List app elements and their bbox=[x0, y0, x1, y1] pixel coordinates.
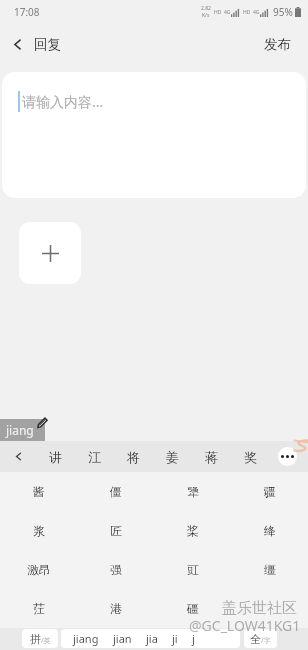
staticText: 疆 bbox=[264, 484, 276, 499]
staticText: 僵 bbox=[110, 484, 122, 499]
staticText: 酱 bbox=[33, 484, 45, 499]
button[interactable]: 请输入内容... bbox=[2, 72, 306, 198]
staticText: 茳 bbox=[33, 601, 45, 616]
staticText: ji bbox=[172, 631, 178, 646]
button[interactable]: 发布 bbox=[248, 26, 308, 62]
staticText: 95% bbox=[273, 5, 293, 19]
staticText: 匠 bbox=[110, 523, 122, 538]
button[interactable]: 江 bbox=[75, 441, 114, 472]
button[interactable]: 强 bbox=[77, 550, 154, 589]
staticText: 蒋 bbox=[205, 449, 218, 465]
staticText: 讲 bbox=[49, 449, 62, 465]
button[interactable]: jia bbox=[139, 629, 165, 648]
staticText: 江 bbox=[88, 449, 101, 465]
staticText: 浆 bbox=[33, 523, 45, 538]
staticText: @GC_LOW41KG1 bbox=[189, 616, 301, 635]
button[interactable]: 姜 bbox=[153, 441, 192, 472]
button[interactable]: More options bbox=[278, 447, 297, 466]
staticText: jia bbox=[146, 631, 158, 646]
staticText: 奖 bbox=[244, 449, 257, 465]
button[interactable]: 桨 bbox=[154, 511, 231, 550]
button[interactable]: 港 bbox=[77, 589, 154, 628]
staticText: /字 bbox=[261, 636, 271, 646]
button[interactable]: 茳 bbox=[0, 589, 77, 628]
staticText: 发布 bbox=[264, 36, 291, 53]
button[interactable]: 酱 bbox=[0, 472, 77, 511]
button[interactable]: Add photo bbox=[19, 222, 81, 284]
staticText: 礓 bbox=[187, 601, 199, 616]
other: Back bbox=[11, 38, 24, 51]
staticText: 盖乐世社区 bbox=[222, 599, 297, 618]
button[interactable]: 缰 bbox=[231, 550, 308, 589]
staticText: 回复 bbox=[34, 36, 61, 53]
staticText: 姜 bbox=[166, 449, 179, 465]
staticText: 2.82 bbox=[201, 5, 211, 12]
button[interactable]: 僵 bbox=[77, 472, 154, 511]
staticText: 激昂 bbox=[27, 562, 51, 577]
button[interactable] bbox=[231, 589, 308, 628]
button[interactable]: 疆 bbox=[231, 472, 308, 511]
staticText: 缰 bbox=[264, 562, 276, 577]
staticText: HD bbox=[243, 9, 251, 16]
button[interactable]: 绛 bbox=[231, 511, 308, 550]
button[interactable]: jiang bbox=[66, 629, 106, 648]
staticText: 桨 bbox=[187, 523, 199, 538]
staticText: 请输入内容... bbox=[22, 92, 104, 111]
staticText: 犟 bbox=[187, 484, 199, 499]
staticText: 港 bbox=[110, 601, 122, 616]
button[interactable]: 豇 bbox=[154, 550, 231, 589]
staticText: HD bbox=[214, 9, 222, 16]
staticText: 拼 bbox=[30, 632, 41, 646]
staticText: jiang bbox=[73, 631, 99, 646]
staticText: 17:08 bbox=[14, 5, 40, 19]
button[interactable]: 蒋 bbox=[192, 441, 231, 472]
staticText: 全 bbox=[250, 632, 261, 646]
staticText: j bbox=[192, 631, 195, 646]
button[interactable]: 激昂 bbox=[0, 550, 77, 589]
button[interactable]: ji bbox=[165, 629, 185, 648]
staticText: 4G bbox=[253, 9, 260, 16]
other: Edit input bbox=[37, 417, 48, 428]
staticText: jian bbox=[113, 631, 132, 646]
staticText: K/s bbox=[202, 12, 210, 19]
button[interactable]: Back bbox=[0, 26, 71, 62]
button[interactable]: 浆 bbox=[0, 511, 77, 550]
button[interactable]: Previous page bbox=[0, 441, 36, 472]
button[interactable]: 将 bbox=[114, 441, 153, 472]
button[interactable]: jiang bbox=[0, 419, 45, 441]
staticText: 绛 bbox=[264, 523, 276, 538]
button[interactable]: 匠 bbox=[77, 511, 154, 550]
button[interactable]: j bbox=[185, 629, 202, 648]
staticText: jiang bbox=[6, 422, 34, 438]
button[interactable]: 拼 bbox=[22, 629, 58, 648]
button[interactable]: 讲 bbox=[36, 441, 75, 472]
staticText: 4G bbox=[224, 9, 231, 16]
button[interactable]: 全 bbox=[244, 629, 277, 648]
button[interactable]: 奖 bbox=[231, 441, 270, 472]
staticText: 豇 bbox=[187, 562, 199, 577]
button[interactable]: jian bbox=[106, 629, 139, 648]
staticText: 将 bbox=[127, 449, 140, 465]
button[interactable]: 犟 bbox=[154, 472, 231, 511]
staticText: /英 bbox=[41, 636, 51, 646]
button[interactable]: 礓 bbox=[154, 589, 231, 628]
staticText: 强 bbox=[110, 562, 122, 577]
